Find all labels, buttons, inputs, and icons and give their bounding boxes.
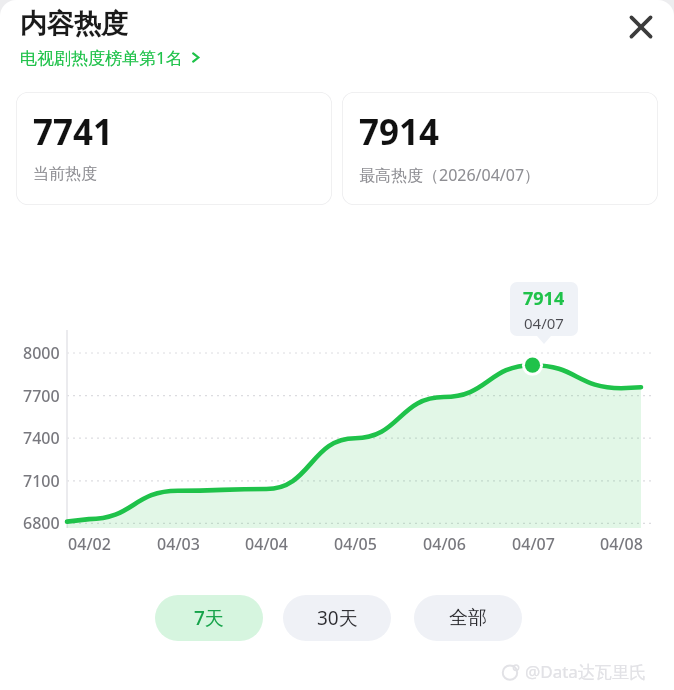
staticText: 当前热度 (33, 164, 97, 184)
staticText: 最高热度（2026/04/07） (359, 164, 541, 186)
staticText: 04/04 (245, 533, 288, 555)
staticText: 7100 (23, 470, 60, 492)
staticText: 04/07 (524, 313, 564, 333)
staticText: 电视剧热度榜单第1名 (20, 46, 183, 69)
staticText: 7741 (33, 108, 114, 156)
staticText: @Data达瓦里氏 (525, 660, 646, 683)
staticText: 04/06 (423, 533, 466, 555)
staticText: 04/07 (512, 533, 555, 555)
staticText: 04/05 (334, 533, 377, 555)
staticText: 04/08 (600, 533, 643, 555)
staticText: 04/02 (68, 533, 111, 555)
staticText: 7天 (194, 605, 224, 631)
button[interactable]: 7天 (155, 595, 263, 641)
staticText: 7700 (23, 385, 60, 407)
staticText: 30天 (317, 605, 358, 631)
staticText: 内容热度 (20, 7, 128, 41)
button[interactable]: 7914 (342, 92, 658, 205)
staticText: 7914 (523, 286, 565, 311)
staticText: 6800 (23, 512, 60, 534)
staticText: 04/03 (157, 533, 200, 555)
staticText: 全部 (449, 606, 487, 630)
staticText: 7400 (23, 427, 60, 449)
staticText: 7914 (359, 108, 440, 156)
staticText: 8000 (23, 342, 60, 364)
button[interactable]: 全部 (414, 595, 522, 641)
button[interactable]: 30天 (283, 595, 391, 641)
button[interactable]: 7741 (16, 92, 332, 205)
button[interactable]: 电视剧热度榜单第1名 (20, 46, 202, 69)
button[interactable]: Close (619, 5, 663, 49)
